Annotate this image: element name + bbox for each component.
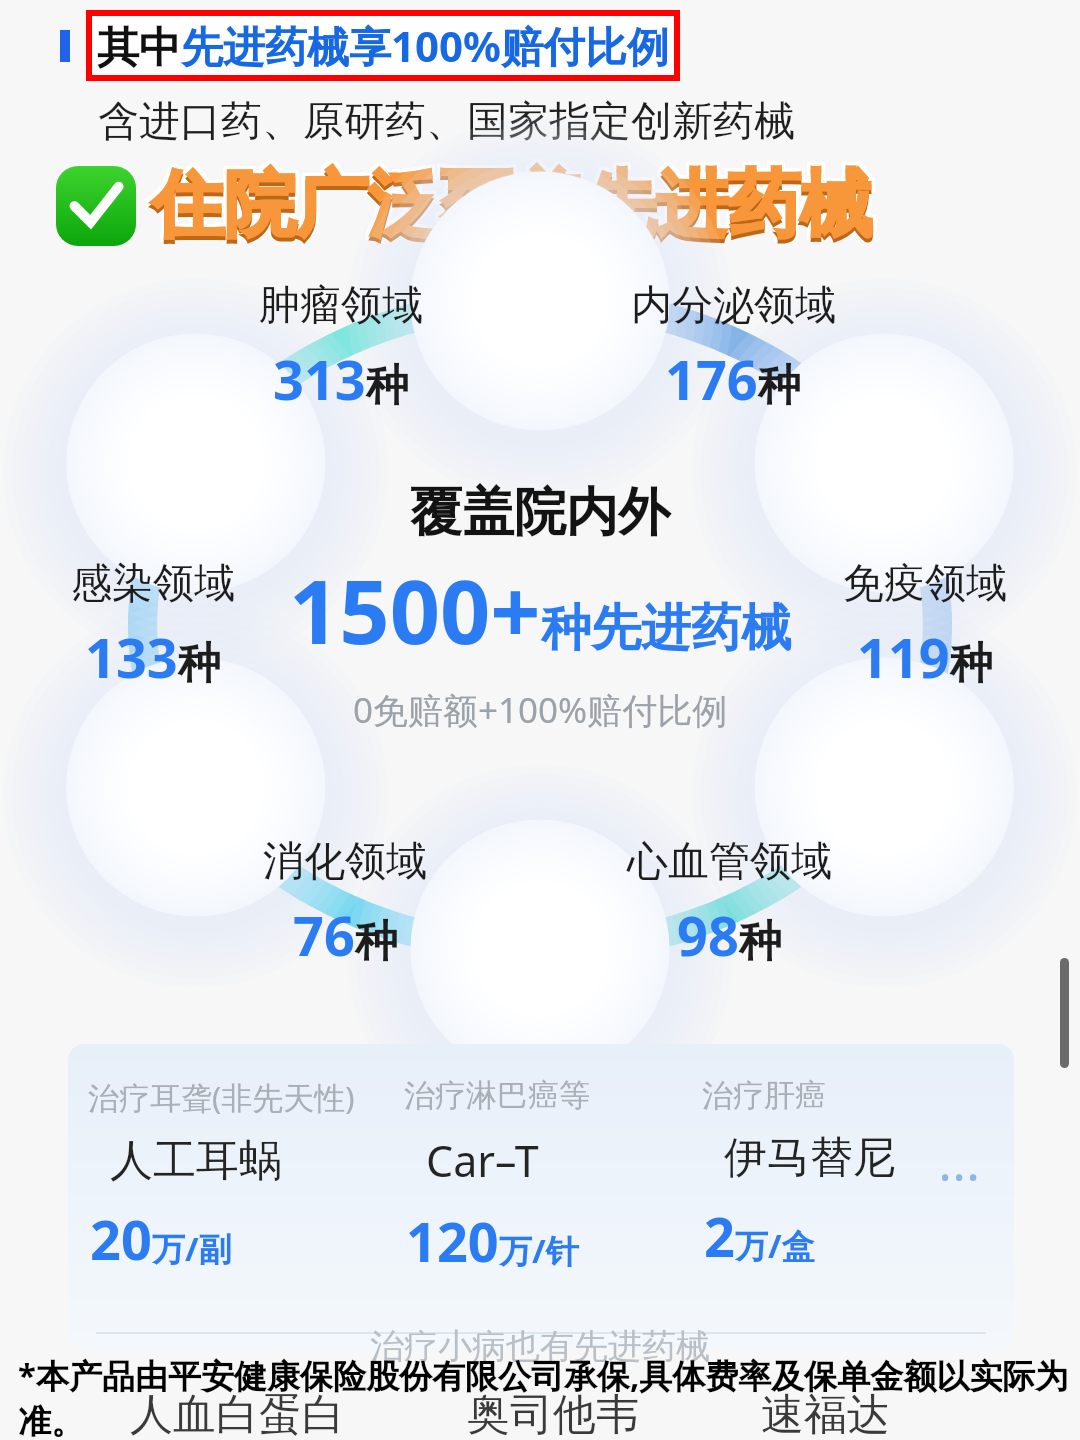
staticText: • • • — [941, 1162, 978, 1192]
staticText: 治疗淋巴癌等 — [404, 1076, 590, 1115]
staticText: 住院广泛覆盖先进药械 — [150, 163, 870, 254]
staticText: 治疗小病也有先进药械 — [370, 1325, 710, 1368]
staticText: 住院广泛覆盖先进药械 — [155, 160, 875, 251]
button[interactable]: 内分泌领域 — [600, 280, 866, 416]
staticText: 万/盒 — [735, 1223, 815, 1268]
staticText: 治疗耳聋(非先天性) — [88, 1076, 355, 1118]
staticText: 2 — [704, 1199, 735, 1273]
button[interactable]: 治疗耳聋(非先天性) — [88, 1076, 404, 1276]
staticText: 种 — [950, 637, 993, 691]
staticText: 住院广泛覆盖先进药械 — [152, 163, 872, 254]
staticText: 住院广泛覆盖先进药械 — [155, 159, 875, 250]
staticText: 住院广泛覆盖先进药械 — [149, 158, 869, 249]
button[interactable]: 消化领域 — [212, 836, 478, 972]
staticText: 住院广泛覆盖先进药械 — [151, 163, 871, 254]
button[interactable]: 免疫领域 — [792, 558, 1058, 694]
staticText: 住院广泛覆盖先进药械 — [151, 157, 871, 248]
staticText: 肿瘤领域 — [259, 280, 423, 332]
staticText: 奥司他韦 — [467, 1388, 639, 1440]
staticText: 176 — [665, 342, 758, 416]
staticText: 含进口药、原研药、国家指定创新药械 — [98, 96, 795, 148]
staticText: 313 — [273, 342, 366, 416]
staticText: 免疫领域 — [843, 558, 1007, 610]
staticText: 住院广泛覆盖先进药械 — [150, 161, 870, 252]
staticText: 种 — [355, 915, 398, 969]
staticText: 万/副 — [152, 1226, 232, 1271]
staticText: 住院广泛覆盖先进药械 — [150, 158, 870, 249]
staticText: 住院广泛覆盖先进药械 — [149, 161, 869, 252]
staticText: 住院广泛覆盖先进药械 — [153, 162, 873, 253]
staticText: 种 — [758, 359, 801, 413]
staticText: 住院广泛覆盖先进药械 — [151, 158, 871, 249]
staticText: 住院广泛覆盖先进药械 — [155, 157, 875, 248]
staticText: 内分泌领域 — [631, 280, 836, 332]
staticText: 心血管领域 — [627, 836, 832, 888]
staticText: 0免赔额+100%赔付比例 — [353, 686, 728, 734]
staticText: 其中先进药械享100%赔付比例 — [97, 17, 669, 74]
staticText: 万/针 — [499, 1228, 579, 1273]
staticText: 住院广泛覆盖先进药械 — [149, 157, 869, 248]
staticText: 住院广泛覆盖先进药械 — [154, 163, 874, 254]
staticText: 消化领域 — [263, 836, 427, 888]
staticText: 住院广泛覆盖先进药械 — [151, 162, 871, 253]
staticText: 98 — [677, 898, 739, 972]
staticText: 住院广泛覆盖先进药械 — [154, 157, 874, 248]
staticText: 治疗肝癌 — [702, 1076, 826, 1115]
staticText: 住院广泛覆盖先进药械 — [155, 162, 875, 253]
staticText: 住院广泛覆盖先进药械 — [152, 157, 872, 248]
staticText: 种 — [178, 637, 221, 691]
staticText: 覆盖院内外 — [410, 480, 670, 546]
staticText: 感染领域 — [71, 558, 235, 610]
staticText: 速福达 — [761, 1388, 890, 1440]
staticText: 住院广泛覆盖先进药械 — [152, 164, 872, 255]
staticText: 住院广泛覆盖先进药械 — [155, 158, 875, 249]
staticText: 住院广泛覆盖先进药械 — [149, 160, 869, 251]
staticText: 76 — [293, 898, 355, 972]
staticText: 住院广泛覆盖先进药械 — [154, 161, 874, 252]
staticText: 住院广泛覆盖先进药械 — [149, 159, 869, 250]
staticText: 住院广泛覆盖先进药械 — [153, 163, 873, 254]
staticText: 住院广泛覆盖先进药械 — [155, 163, 875, 254]
button[interactable]: 治疗淋巴癌等 — [404, 1076, 702, 1278]
staticText: 119 — [857, 620, 950, 694]
staticText: *本产品由平安健康保险股份有限公司承保,具体费率及保单金额以实际为准。 — [18, 1353, 1080, 1440]
staticText: 住院广泛覆盖先进药械 — [149, 162, 869, 253]
staticText: 人血白蛋白 — [130, 1388, 345, 1440]
staticText: 伊马替尼 — [724, 1131, 896, 1185]
staticText: 住院广泛覆盖先进药械 — [155, 161, 875, 252]
staticText: 住院广泛覆盖先进药械 — [153, 157, 873, 248]
staticText: 住院广泛覆盖先进药械 — [154, 162, 874, 253]
staticText: 人工耳蜗 — [110, 1134, 282, 1188]
button[interactable]: 感染领域 — [20, 558, 286, 694]
staticText: 住院广泛覆盖先进药械 — [154, 158, 874, 249]
staticText: 住院广泛覆盖先进药械 — [150, 162, 870, 253]
staticText: 种 — [739, 915, 782, 969]
button[interactable]: 肿瘤领域 — [208, 280, 474, 416]
button[interactable]: 治疗耳聋(非先天性) — [68, 1044, 1014, 1350]
button[interactable]: Covered — [56, 166, 136, 246]
button[interactable]: 治疗肝癌 — [702, 1076, 952, 1273]
staticText: Car–T — [426, 1131, 539, 1190]
staticText: 住院广泛覆盖先进药械 — [152, 160, 872, 251]
staticText: 住院广泛覆盖先进药械 — [150, 159, 870, 250]
staticText: 种先进药械 — [541, 597, 791, 660]
staticText: 1500+ — [289, 550, 541, 670]
staticText: 120 — [406, 1204, 499, 1278]
staticText: 种 — [366, 359, 409, 413]
staticText: 住院广泛覆盖先进药械 — [153, 158, 873, 249]
staticText: 20 — [90, 1202, 152, 1276]
staticText: 133 — [85, 620, 178, 694]
staticText: 住院广泛覆盖先进药械 — [154, 159, 874, 250]
staticText: 住院广泛覆盖先进药械 — [149, 163, 869, 254]
button[interactable]: 心血管领域 — [596, 836, 862, 972]
staticText: 住院广泛覆盖先进药械 — [150, 157, 870, 248]
